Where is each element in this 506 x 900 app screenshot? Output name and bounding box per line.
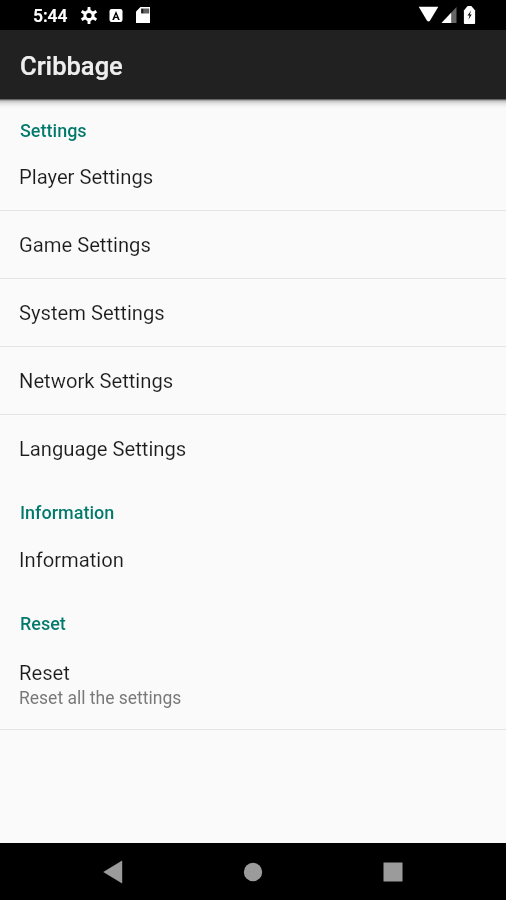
staticText: Game Settings xyxy=(19,233,151,257)
button[interactable]: Back xyxy=(85,843,141,900)
button[interactable]: Information xyxy=(0,526,506,594)
staticText: System Settings xyxy=(19,301,165,325)
staticText: Cribbage xyxy=(20,51,123,81)
staticText: Network Settings xyxy=(19,369,174,393)
staticText: Reset xyxy=(19,661,70,685)
staticText: Reset xyxy=(20,613,66,634)
staticText: Reset all the settings xyxy=(19,688,182,709)
button[interactable]: Network Settings xyxy=(0,347,506,415)
button[interactable]: Home xyxy=(225,843,281,900)
staticText: Settings xyxy=(20,120,87,141)
staticText: Player Settings xyxy=(19,165,154,189)
button[interactable]: Reset xyxy=(0,637,506,730)
staticText: 5:44 xyxy=(33,6,68,27)
button[interactable]: Game Settings xyxy=(0,211,506,279)
button[interactable]: Language Settings xyxy=(0,415,506,483)
staticText: Information xyxy=(20,502,115,523)
button[interactable]: Player Settings xyxy=(0,143,506,211)
staticText: Information xyxy=(19,548,124,572)
button[interactable]: System Settings xyxy=(0,279,506,347)
button[interactable]: Recent apps xyxy=(365,843,421,900)
staticText: Language Settings xyxy=(19,437,187,461)
